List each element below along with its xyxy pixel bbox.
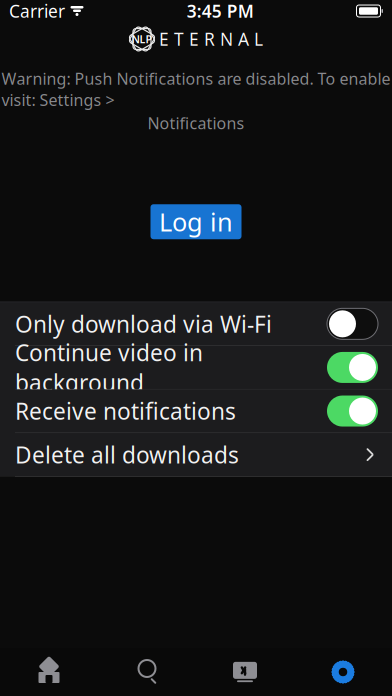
button[interactable]: Continue video in background bbox=[0, 346, 392, 389]
staticText: Continue video in background bbox=[15, 337, 203, 397]
staticText: Notifications bbox=[147, 112, 244, 134]
staticText: E T E R N A L bbox=[159, 27, 263, 50]
button[interactable]: Settings bbox=[294, 648, 392, 696]
button[interactable]: Videos bbox=[196, 648, 294, 696]
staticText: Only download via Wi-Fi bbox=[15, 309, 272, 339]
staticText: Warning: Push Notifications are disabled… bbox=[1, 68, 390, 110]
staticText: Delete all downloads bbox=[15, 440, 239, 470]
staticText: NLP bbox=[131, 32, 152, 46]
button[interactable]: Only download via Wi-Fi bbox=[0, 302, 392, 345]
staticText: 3:45 PM bbox=[187, 0, 254, 22]
button[interactable]: Delete all downloads bbox=[0, 433, 392, 476]
button[interactable]: Search bbox=[98, 648, 196, 696]
staticText: Receive notifications bbox=[15, 396, 236, 426]
staticText: Carrier bbox=[9, 0, 65, 22]
button[interactable]: Log in bbox=[150, 204, 241, 239]
button[interactable]: Home bbox=[0, 648, 98, 696]
button[interactable]: Receive notifications bbox=[0, 389, 392, 432]
staticText: Log in bbox=[159, 205, 233, 238]
